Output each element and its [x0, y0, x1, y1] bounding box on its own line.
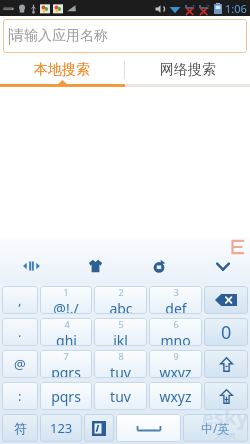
button[interactable]: Move cursor: [18, 253, 44, 279]
button[interactable]: .: [2, 318, 38, 346]
staticText: 9: [173, 350, 179, 362]
button[interactable]: Shift: [204, 350, 248, 378]
button[interactable]: wxyz: [149, 382, 202, 410]
staticText: 8: [118, 350, 124, 362]
staticText: 符: [14, 420, 27, 436]
button[interactable]: Theme: [82, 253, 108, 279]
staticText: jkl: [113, 331, 128, 346]
staticText: pqrs: [51, 363, 81, 378]
staticText: 1: [63, 286, 69, 298]
staticText: wxyz: [159, 387, 192, 406]
button[interactable]: 2: [94, 286, 147, 314]
button[interactable]: 6: [149, 318, 202, 346]
button[interactable]: Shift lock: [204, 382, 248, 410]
staticText: abc: [109, 299, 133, 314]
staticText: 1:06: [225, 1, 247, 16]
staticText: 7: [63, 350, 69, 362]
staticText: 请输入应用名称: [10, 27, 108, 45]
staticText: 6: [173, 318, 179, 330]
button[interactable]: 请输入应用名称: [3, 19, 247, 53]
staticText: 本地搜索: [34, 61, 90, 79]
staticText: 2: [206, 3, 210, 11]
staticText: 123: [50, 419, 73, 437]
button[interactable]: Delete: [204, 286, 248, 314]
staticText: 网络搜索: [160, 61, 216, 79]
button[interactable]: 本地搜索: [0, 56, 124, 84]
staticText: 2: [118, 286, 124, 298]
staticText: :: [18, 387, 22, 405]
staticText: 中/英: [201, 420, 230, 436]
staticText: 5: [118, 318, 124, 330]
button[interactable]: ,: [2, 286, 38, 314]
staticText: wxyz: [159, 363, 192, 378]
staticText: 0: [221, 320, 232, 345]
staticText: ghi: [56, 331, 77, 346]
staticText: @!./: [53, 299, 79, 314]
staticText: 天空网: [215, 431, 236, 440]
staticText: .: [18, 323, 22, 341]
button[interactable]: Zero: [204, 318, 248, 346]
staticText: 1: [192, 3, 196, 11]
staticText: pqrs: [51, 387, 81, 406]
button[interactable]: 3: [149, 286, 202, 314]
button[interactable]: Symbols: [2, 414, 38, 442]
staticText: 4: [64, 318, 70, 330]
button[interactable]: Space: [116, 414, 181, 442]
button[interactable]: Chinese English toggle: [183, 414, 248, 442]
staticText: tuv: [110, 387, 131, 406]
button[interactable]: 4: [40, 318, 92, 346]
button[interactable]: Emoji: [146, 253, 172, 279]
staticText: 3: [173, 286, 179, 298]
button[interactable]: 网络搜索: [125, 56, 250, 84]
staticText: def: [165, 299, 187, 314]
staticText: @: [14, 355, 26, 373]
staticText: esky: [202, 404, 248, 431]
button[interactable]: @: [2, 350, 38, 378]
button[interactable]: 1: [40, 286, 92, 314]
button[interactable]: 5: [94, 318, 147, 346]
button[interactable]: Hide keyboard: [210, 253, 236, 279]
button[interactable]: pqrs: [40, 382, 92, 410]
button[interactable]: Input method: [84, 414, 114, 442]
button[interactable]: 7: [40, 350, 92, 378]
staticText: tuv: [110, 363, 131, 378]
staticText: ,: [18, 291, 22, 309]
button[interactable]: 9: [149, 350, 202, 378]
button[interactable]: tuv: [94, 382, 147, 410]
button[interactable]: Numbers: [40, 414, 82, 442]
staticText: mno: [160, 331, 191, 346]
button[interactable]: 8: [94, 350, 147, 378]
button[interactable]: :: [2, 382, 38, 410]
